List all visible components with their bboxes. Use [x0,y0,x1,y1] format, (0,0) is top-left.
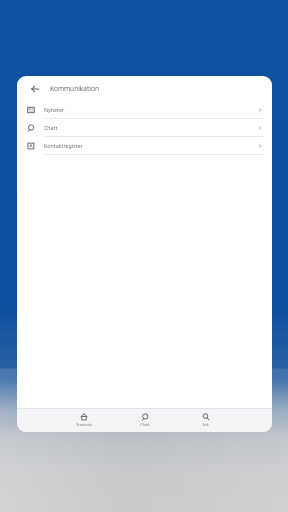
button[interactable]: Back [26,80,44,98]
staticText: Startsida [76,422,92,427]
button[interactable]: Startsida [53,408,114,432]
staticText: Chatt [44,124,58,131]
button[interactable]: Kontaktregister [17,137,272,155]
button[interactable]: Chatt [17,119,272,137]
staticText: Chatt [140,422,150,427]
button[interactable]: Nyheter [17,101,272,119]
staticText: Sök [202,422,209,427]
staticText: Nyheter [44,106,65,113]
staticText: Kontaktregister [44,142,83,149]
staticText: Kommunikation [50,84,99,93]
button[interactable]: Sök [175,408,236,432]
button[interactable]: Chatt [114,408,175,432]
